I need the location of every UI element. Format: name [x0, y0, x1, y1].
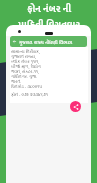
staticText: સામાન્ય નિરીક્ષક, ગુજરાત રાજ્ય, બ્લોક નં…	[11, 49, 42, 89]
button[interactable]: Share	[70, 101, 81, 112]
staticText: ફોન - ૦૭૯ ૨૩૩૪૬૭૧	[11, 92, 48, 98]
other: Back	[10, 36, 19, 47]
staticText: ફોન નંબર ની	[27, 1, 71, 17]
button[interactable]: Back	[10, 36, 87, 47]
staticText: માહિતી વિગતવાર	[18, 17, 80, 33]
staticText: ગુજરાત રાજ્ય નોંધણી વિભાગ	[19, 38, 73, 46]
